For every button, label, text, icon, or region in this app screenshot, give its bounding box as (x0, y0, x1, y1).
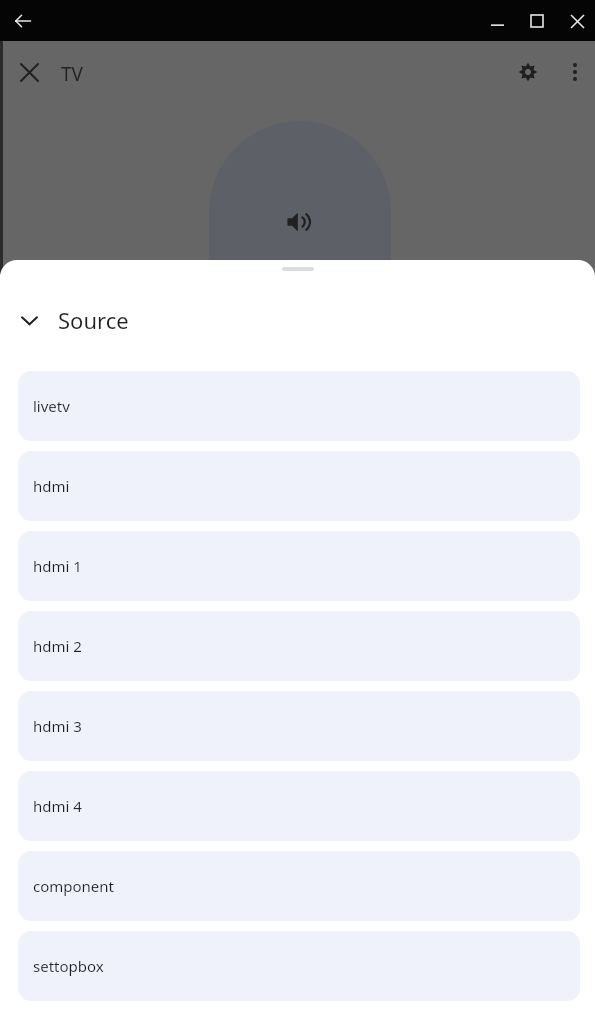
button[interactable]: Settings (510, 54, 546, 90)
staticText: hdmi 2 (33, 636, 82, 656)
button[interactable]: Source (0, 298, 595, 342)
staticText: TV (61, 61, 83, 87)
button[interactable]: Maximize (519, 4, 555, 38)
button[interactable]: hdmi 2 (18, 611, 580, 681)
button[interactable]: Minimize (479, 4, 515, 38)
staticText: livetv (33, 396, 70, 416)
button[interactable]: Close (11, 54, 47, 90)
staticText: hdmi (33, 476, 70, 496)
button[interactable]: hdmi 1 (18, 531, 580, 601)
staticText: hdmi 3 (33, 716, 82, 736)
staticText: hdmi 1 (33, 556, 82, 576)
button[interactable]: component (18, 851, 580, 921)
staticText: hdmi 4 (33, 796, 82, 816)
button[interactable]: hdmi 4 (18, 771, 580, 841)
button[interactable]: Back (6, 4, 40, 38)
staticText: Source (58, 305, 129, 335)
button[interactable]: livetv (18, 371, 580, 441)
button[interactable]: Close window (559, 4, 595, 38)
button[interactable]: settopbox (18, 931, 580, 1001)
button[interactable]: hdmi (18, 451, 580, 521)
button[interactable]: More options (557, 54, 593, 90)
button[interactable]: hdmi 3 (18, 691, 580, 761)
staticText: component (33, 876, 115, 896)
staticText: settopbox (33, 956, 104, 976)
button[interactable]: Volume (209, 121, 391, 281)
